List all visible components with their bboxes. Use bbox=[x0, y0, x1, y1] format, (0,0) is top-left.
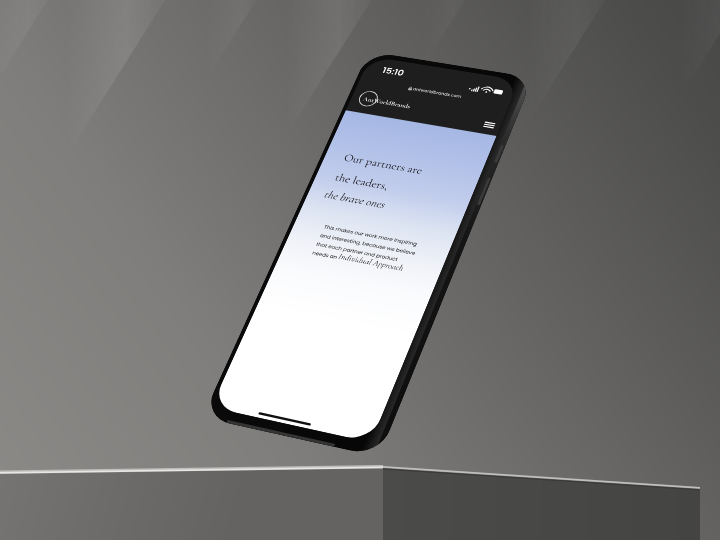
staticText: 15:10 bbox=[380, 65, 406, 79]
staticText: AntWorldBrands bbox=[362, 95, 412, 110]
staticText: Individual Approach bbox=[337, 251, 406, 273]
button[interactable]: AntWorldBrands bbox=[355, 89, 456, 121]
other: Signal, Wi-Fi and battery status bbox=[468, 84, 505, 96]
button[interactable]: Open menu bbox=[479, 118, 499, 132]
staticText: Our partners are bbox=[342, 151, 425, 177]
staticText: This makes our work more inspiring and i… bbox=[311, 223, 421, 274]
staticText: the leaders, bbox=[333, 171, 391, 193]
staticText: antworldbrands.com bbox=[412, 86, 463, 100]
staticText: the brave ones bbox=[322, 188, 388, 211]
